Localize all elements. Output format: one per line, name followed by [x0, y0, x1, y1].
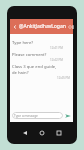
button[interactable]: Send — [63, 111, 72, 120]
staticText: Type a message — [14, 114, 38, 118]
button[interactable]: Home — [36, 127, 48, 139]
button[interactable]: Recents — [53, 127, 65, 139]
staticText: Class 3 que end guide, de hain? — [12, 64, 57, 76]
staticText: Please comment? — [12, 52, 47, 58]
button[interactable]: Type a message — [12, 112, 63, 119]
staticText: 12:41 PM — [50, 46, 63, 50]
button[interactable]: Back — [11, 23, 19, 31]
staticText: 12:45 PM — [57, 76, 70, 80]
staticText: 12:42 PM — [50, 58, 63, 62]
staticText: @AnkitJadhavLogan — [19, 23, 66, 30]
button[interactable]: Call — [66, 23, 73, 30]
staticText: Type here? — [12, 40, 34, 46]
button[interactable]: Back — [19, 127, 31, 139]
